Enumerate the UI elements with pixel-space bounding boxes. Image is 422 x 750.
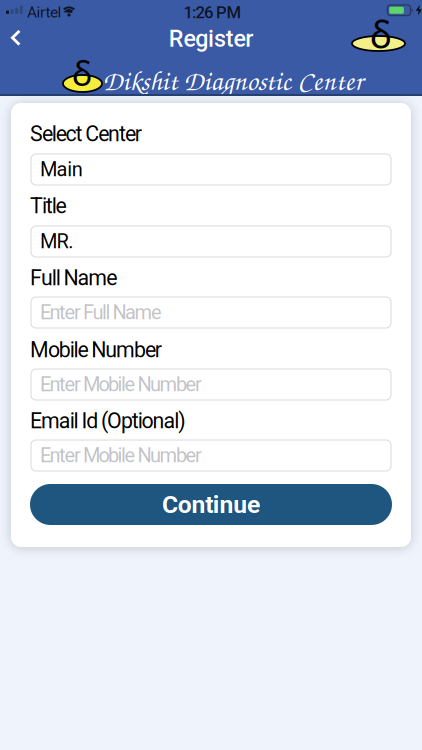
staticText: Airtel	[27, 3, 61, 21]
staticText: Enter Mobile Number	[40, 373, 202, 396]
staticText: Enter Full Name	[40, 301, 162, 324]
staticText: Mobile Number	[30, 337, 162, 362]
staticText: Title	[30, 193, 67, 218]
button[interactable]: MR.	[31, 226, 391, 257]
staticText: Register	[169, 25, 253, 52]
staticText: 1:26 PM	[183, 3, 241, 22]
staticText: δ	[72, 49, 92, 96]
staticText: Dikshit Diagnostic Center	[102, 61, 362, 98]
staticText: Full Name	[30, 265, 117, 290]
staticText: Email Id (Optional)	[30, 408, 185, 433]
staticText: Select Center	[30, 121, 142, 146]
staticText: δ	[370, 9, 392, 59]
button[interactable]: Enter Mobile Number	[31, 369, 391, 400]
button[interactable]: Back	[4, 24, 28, 51]
staticText: Main	[40, 158, 83, 181]
button[interactable]: Enter Full Name	[31, 297, 391, 328]
button[interactable]: Main	[31, 154, 391, 185]
staticText: Enter Mobile Number	[40, 444, 202, 467]
staticText: Continue	[162, 490, 260, 519]
staticText: MR.	[40, 230, 73, 253]
button[interactable]: Continue	[30, 484, 392, 525]
button[interactable]: Enter Mobile Number	[31, 440, 391, 471]
